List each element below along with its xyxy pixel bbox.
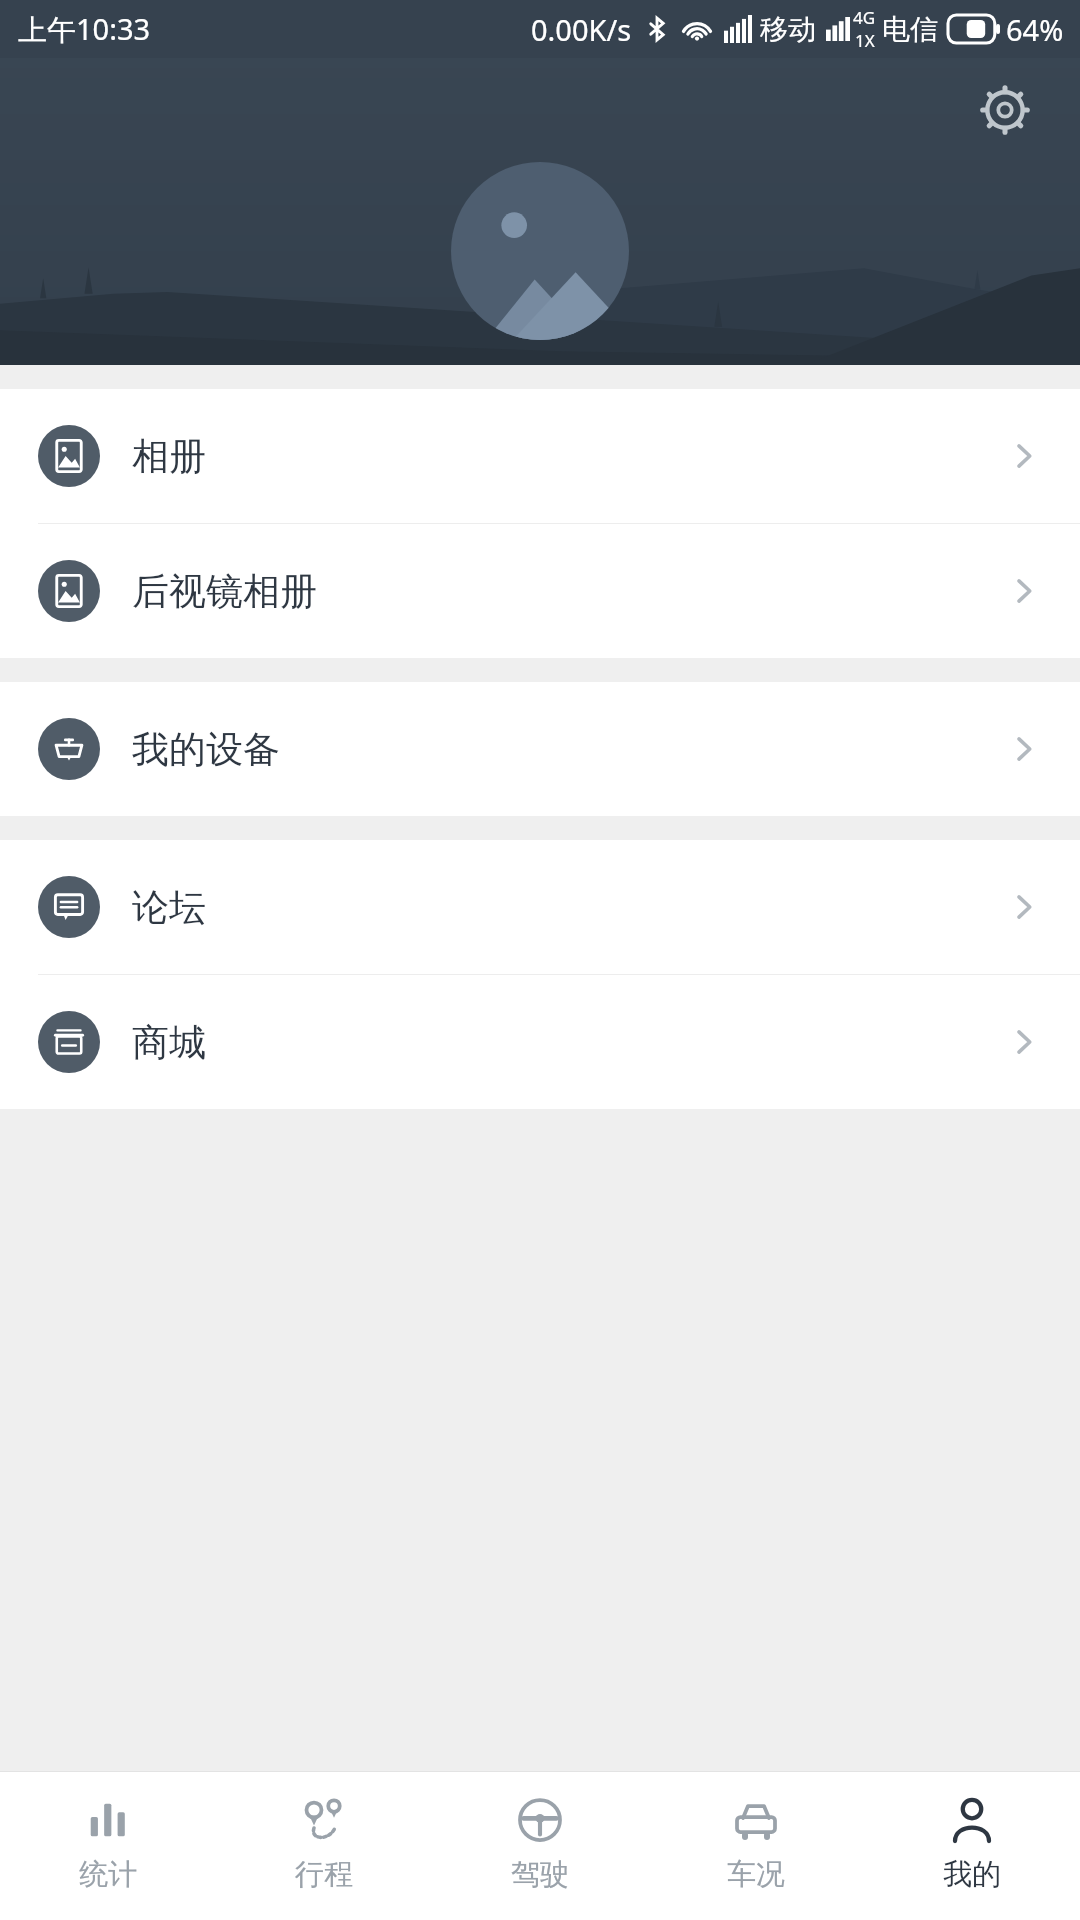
button[interactable]: Profile photo (451, 162, 629, 340)
staticText: 我的 (943, 1856, 1001, 1893)
staticText: 移动 (760, 12, 816, 47)
staticText: 电信 (882, 12, 938, 47)
staticText: 4G (853, 6, 876, 29)
staticText: 后视镜相册 (132, 568, 317, 615)
staticText: 商城 (132, 1019, 206, 1066)
staticText: 车况 (727, 1856, 785, 1893)
button[interactable]: 商城 (0, 975, 1080, 1109)
staticText: 74.6 (250, 489, 374, 575)
button[interactable]: 驾驶 (432, 1772, 648, 1920)
button[interactable]: Settings (970, 75, 1040, 145)
staticText: 行程 (295, 1856, 353, 1893)
staticText: 论坛 (132, 884, 206, 931)
button[interactable]: 论坛 (0, 840, 1080, 974)
button[interactable]: 车况 (648, 1772, 864, 1920)
staticText: 相册 (132, 433, 206, 480)
button[interactable]: 我的 (864, 1772, 1080, 1920)
button[interactable]: 统计 (0, 1772, 216, 1920)
button[interactable]: 我的设备 (0, 682, 1080, 816)
staticText: 1X (855, 29, 875, 52)
staticText: 0.00K/s (531, 10, 632, 49)
button[interactable]: 后视镜相册 (0, 524, 1080, 658)
staticText: 我的设备 (132, 726, 280, 773)
staticText: 驾驶 (511, 1856, 569, 1893)
button[interactable]: 行程 (216, 1772, 432, 1920)
staticText: 上午10:33 (18, 9, 151, 49)
staticText: 统计 (79, 1856, 137, 1893)
staticText: 64% (1006, 10, 1064, 49)
button[interactable]: 相册 (0, 389, 1080, 523)
